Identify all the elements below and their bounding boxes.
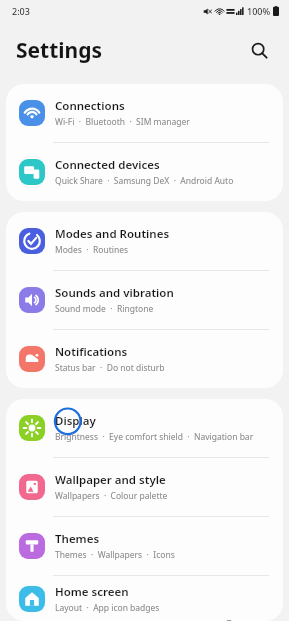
button[interactable]: Connections — [6, 84, 283, 142]
staticText: Display — [55, 413, 96, 429]
button[interactable]: Themes — [6, 517, 283, 575]
button[interactable]: Connected devices — [6, 143, 283, 201]
button[interactable]: Home screen — [6, 576, 283, 621]
staticText: Modes and Routines — [55, 226, 170, 242]
button[interactable]: Modes and Routines — [6, 212, 283, 270]
staticText: Wallpaper and style — [55, 472, 166, 488]
staticText: 100% — [247, 5, 271, 17]
staticText: Home screen — [55, 584, 129, 600]
staticText: Status bar · Do not disturb — [55, 362, 165, 374]
staticText: Sounds and vibration — [55, 285, 174, 301]
staticText: Layout · App icon badges — [55, 602, 160, 614]
staticText: Themes — [55, 531, 100, 547]
staticText: Quick Share · Samsung DeX · Android Auto — [55, 175, 234, 187]
button[interactable]: Search — [241, 32, 277, 68]
button[interactable]: Notifications — [6, 330, 283, 388]
button[interactable]: Sounds and vibration — [6, 271, 283, 329]
button[interactable]: Wallpaper and style — [6, 458, 283, 516]
staticText: Connected devices — [55, 157, 160, 173]
staticText: Wi-Fi · Bluetooth · SIM manager — [55, 116, 190, 128]
staticText: 2:03 — [12, 5, 30, 17]
staticText: Notifications — [55, 344, 128, 360]
staticText: Settings — [16, 36, 103, 65]
staticText: Wallpapers · Colour palette — [55, 490, 168, 502]
staticText: Brightness · Eye comfort shield · Naviga… — [55, 431, 254, 443]
button[interactable]: Display — [6, 399, 283, 457]
staticText: Connections — [55, 98, 125, 114]
staticText: Themes · Wallpapers · Icons — [55, 549, 175, 561]
staticText: Sound mode · Ringtone — [55, 303, 154, 315]
staticText: Modes · Routines — [55, 244, 129, 256]
